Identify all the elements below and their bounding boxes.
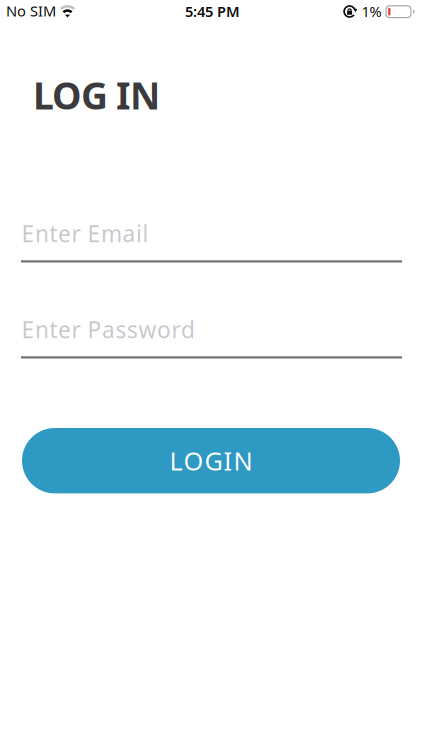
- staticText: Enter Password: [21, 314, 195, 344]
- staticText: Enter Email: [21, 218, 148, 248]
- button[interactable]: Enter Email: [21, 221, 402, 263]
- staticText: LOG IN: [33, 70, 160, 120]
- staticText: 1%: [361, 2, 381, 21]
- button[interactable]: Enter Password: [21, 317, 402, 359]
- staticText: 5:45 PM: [185, 2, 240, 21]
- staticText: No SIM: [6, 1, 56, 20]
- staticText: LOGIN: [169, 444, 252, 477]
- button[interactable]: LOGIN: [22, 428, 400, 493]
